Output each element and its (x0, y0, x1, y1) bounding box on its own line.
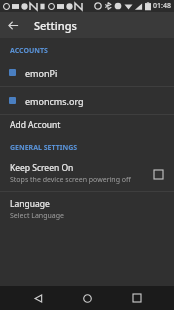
button[interactable]: Home (75, 286, 99, 310)
button[interactable]: Add Account (0, 115, 174, 135)
button[interactable]: Recent apps (125, 286, 149, 310)
staticText: emonPi (25, 67, 58, 79)
staticText: Add Account (10, 119, 61, 131)
staticText: GENERAL SETTINGS (10, 143, 78, 153)
staticText: Settings (34, 18, 77, 33)
staticText: ACCOUNTS (10, 46, 48, 56)
staticText: emoncms.org (25, 95, 84, 107)
button[interactable]: Keep Screen On checkbox (151, 167, 165, 181)
button[interactable]: Language (0, 192, 174, 227)
button[interactable]: emonPi (0, 59, 174, 86)
button[interactable]: Keep Screen On (0, 156, 174, 191)
staticText: 01:48 (153, 1, 171, 11)
staticText: Select Language (10, 211, 64, 221)
button[interactable]: emoncms.org (0, 87, 174, 114)
staticText: Language (10, 198, 50, 210)
staticText: Stops the device screen powering off (10, 175, 131, 185)
button[interactable]: Back (0, 12, 26, 38)
staticText: Keep Screen On (10, 162, 74, 174)
button[interactable]: Back (26, 286, 50, 310)
